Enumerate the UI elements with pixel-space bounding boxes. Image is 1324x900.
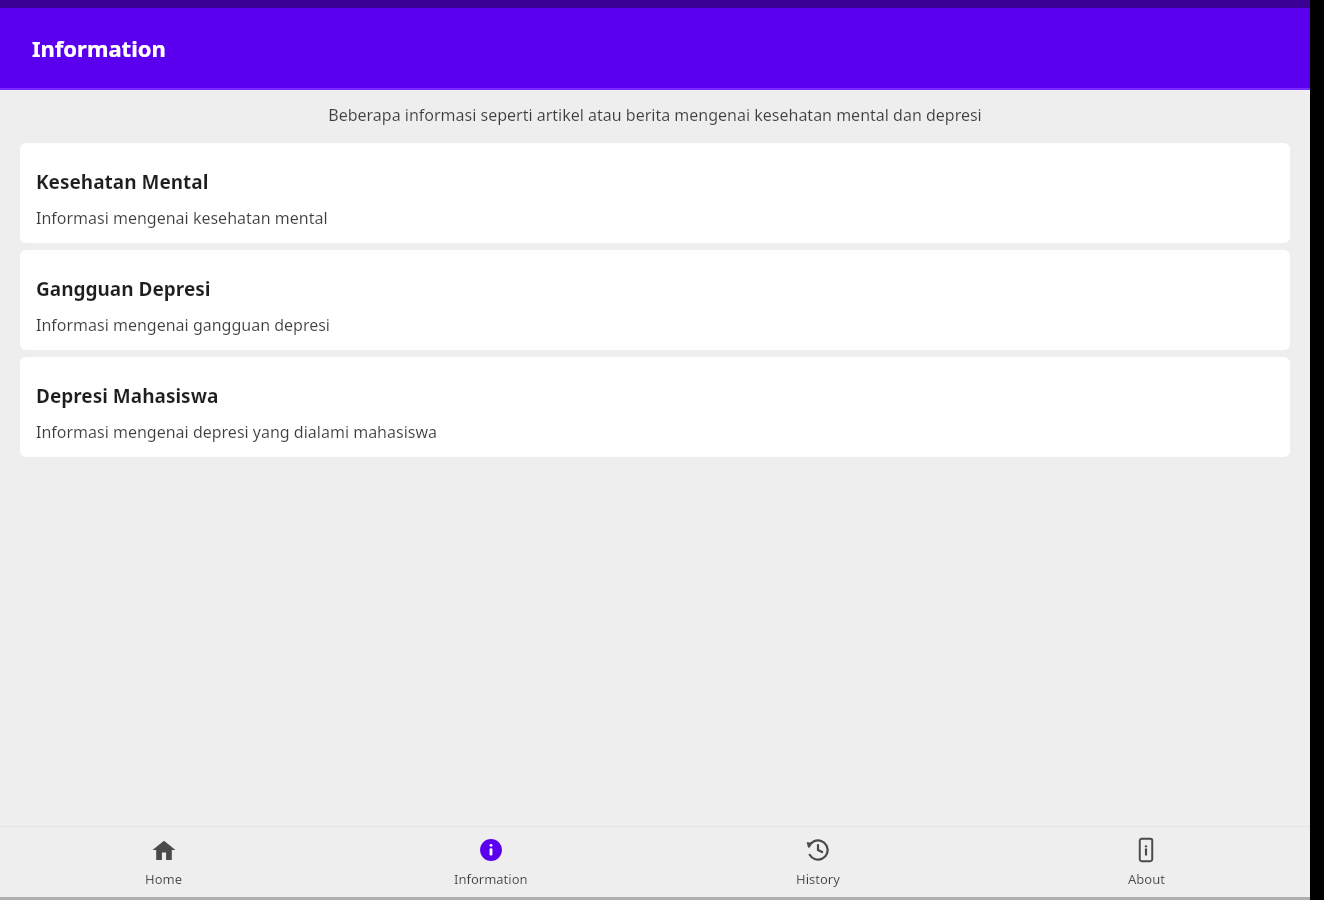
button[interactable]: Kesehatan Mental	[20, 143, 1290, 243]
button[interactable]: About	[982, 827, 1310, 897]
staticText: About	[1128, 870, 1165, 888]
staticText: Informasi mengenai kesehatan mental	[36, 207, 328, 229]
staticText: History	[796, 870, 840, 888]
button[interactable]: History	[654, 827, 982, 897]
staticText: Gangguan Depresi	[36, 276, 211, 302]
button[interactable]: Home	[0, 827, 327, 897]
staticText: Kesehatan Mental	[36, 169, 209, 195]
staticText: Home	[145, 870, 182, 888]
staticText: Depresi Mahasiswa	[36, 383, 219, 409]
button[interactable]: Gangguan Depresi	[20, 250, 1290, 350]
staticText: Informasi mengenai depresi yang dialami …	[36, 421, 437, 443]
staticText: Information	[454, 870, 528, 888]
staticText: Beberapa informasi seperti artikel atau …	[24, 104, 1286, 126]
button[interactable]: Information	[327, 827, 654, 897]
button[interactable]: Depresi Mahasiswa	[20, 357, 1290, 457]
staticText: Information	[32, 33, 166, 63]
staticText: Informasi mengenai gangguan depresi	[36, 314, 330, 336]
